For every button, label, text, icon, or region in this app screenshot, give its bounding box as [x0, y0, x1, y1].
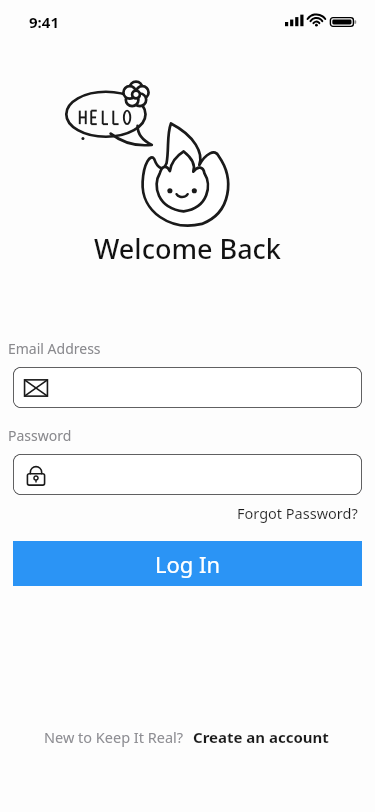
button[interactable]: Log In: [13, 541, 362, 586]
staticText: Forgot Password?: [237, 503, 358, 523]
staticText: Log In: [155, 549, 221, 579]
staticText: New to Keep It Real?: [44, 727, 184, 747]
staticText: Email Address: [8, 339, 101, 358]
staticText: 9:41: [29, 12, 59, 32]
button[interactable]: Create an account: [191, 724, 331, 750]
button[interactable]: Password field: [13, 454, 362, 495]
button[interactable]: Email Address field: [13, 367, 362, 408]
staticText: Welcome Back: [94, 230, 281, 267]
staticText: Create an account: [193, 727, 329, 747]
button[interactable]: Forgot Password?: [235, 501, 360, 525]
staticText: Password: [8, 426, 72, 445]
